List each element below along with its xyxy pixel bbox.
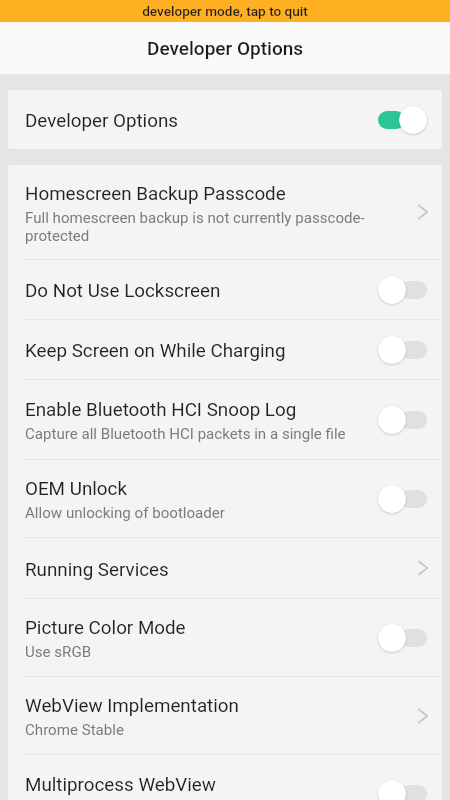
staticText: Capture all Bluetooth HCI packets in a s… <box>25 425 346 443</box>
staticText: developer mode, tap to quit <box>142 3 308 19</box>
other: Picture Color Mode toggle, off <box>378 623 427 653</box>
staticText: Running Services <box>25 559 169 581</box>
other: OEM Unlock toggle, off <box>378 484 427 514</box>
staticText: Do Not Use Lockscreen <box>25 280 221 302</box>
other: Developer Options toggle, on <box>378 105 427 135</box>
button[interactable]: Developer Options <box>8 90 442 149</box>
staticText: Use sRGB <box>25 643 92 661</box>
other: Multiprocess WebView toggle, off <box>378 779 427 800</box>
other: Open Running Services <box>412 557 434 579</box>
staticText: Developer Options <box>25 110 178 132</box>
staticText: Picture Color Mode <box>25 617 186 639</box>
button[interactable]: Keep Screen on While Charging <box>8 320 442 379</box>
button[interactable]: Running Services <box>8 538 442 598</box>
button[interactable]: WebView Implementation <box>8 677 442 754</box>
staticText: Developer Options <box>147 37 304 59</box>
button[interactable]: Picture Color Mode <box>8 599 442 676</box>
staticText: Homescreen Backup Passcode <box>25 183 286 205</box>
other: Open WebView Implementation <box>412 705 434 727</box>
staticText: Multiprocess WebView <box>25 774 216 796</box>
button[interactable]: Homescreen Backup Passcode <box>8 165 442 259</box>
staticText: Keep Screen on While Charging <box>25 340 286 362</box>
staticText: OEM Unlock <box>25 478 127 500</box>
button[interactable]: Multiprocess WebView <box>8 755 442 800</box>
other: Do Not Use Lockscreen toggle, off <box>378 275 427 305</box>
button[interactable]: developer mode, tap to quit <box>0 0 450 22</box>
other: Keep Screen on While Charging toggle, of… <box>378 335 427 365</box>
staticText: Chrome Stable <box>25 721 124 739</box>
button[interactable]: Do Not Use Lockscreen <box>8 260 442 319</box>
other: Enable Bluetooth HCI Snoop Log toggle, o… <box>378 405 427 435</box>
staticText: WebView Implementation <box>25 695 239 717</box>
staticText: Enable Bluetooth HCI Snoop Log <box>25 399 297 421</box>
staticText: Allow unlocking of bootloader <box>25 504 225 522</box>
button[interactable]: OEM Unlock <box>8 460 442 537</box>
staticText: Full homescreen backup is not currently … <box>25 209 389 245</box>
other: Open Homescreen Backup Passcode <box>412 201 434 223</box>
button[interactable]: Enable Bluetooth HCI Snoop Log <box>8 380 442 459</box>
